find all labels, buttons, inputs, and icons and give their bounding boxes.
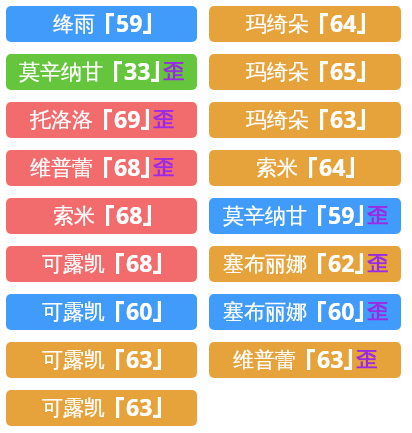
staticText: 玛绮朵 (246, 107, 309, 133)
staticText: 60 (126, 295, 153, 326)
staticText: 可露凯 (42, 347, 105, 373)
button[interactable]: 可露凯 (6, 294, 197, 330)
staticText: 玛绮朵 (246, 11, 309, 37)
staticText: 玛绮朵 (246, 59, 309, 85)
staticText: 65 (330, 55, 357, 86)
staticText: 绛雨 (53, 11, 95, 37)
staticText: 维普蕾 (233, 347, 296, 373)
button[interactable]: 塞布丽娜 (209, 294, 401, 330)
button[interactable]: 玛绮朵 (209, 6, 401, 42)
button[interactable]: 索米 (209, 150, 401, 186)
staticText: 62 (328, 247, 355, 278)
staticText: 63 (317, 343, 344, 374)
staticText: 索米 (256, 155, 298, 181)
button[interactable]: 索米 (6, 198, 197, 234)
button[interactable]: 托洛洛 (6, 102, 197, 138)
staticText: 歪 (367, 251, 388, 277)
staticText: 托洛洛 (30, 107, 93, 133)
staticText: 歪 (163, 59, 184, 85)
staticText: 59 (116, 7, 143, 38)
staticText: 塞布丽娜 (223, 251, 307, 277)
staticText: 68 (126, 247, 153, 278)
staticText: 歪 (153, 107, 174, 133)
staticText: 莫辛纳甘 (19, 59, 103, 85)
button[interactable]: 塞布丽娜 (209, 246, 401, 282)
staticText: 可露凯 (42, 251, 105, 277)
button[interactable]: 维普蕾 (209, 342, 401, 378)
staticText: 68 (114, 151, 141, 182)
staticText: 可露凯 (42, 299, 105, 325)
button[interactable]: 可露凯 (6, 342, 197, 378)
staticText: 索米 (53, 203, 95, 229)
button[interactable]: 玛绮朵 (209, 102, 401, 138)
staticText: 63 (126, 391, 153, 422)
staticText: 68 (116, 199, 143, 230)
button[interactable]: 莫辛纳甘 (209, 198, 401, 234)
button[interactable]: 玛绮朵 (209, 54, 401, 90)
staticText: 歪 (153, 155, 174, 181)
staticText: 可露凯 (42, 395, 105, 421)
staticText: 歪 (367, 299, 388, 325)
staticText: 歪 (356, 347, 377, 373)
staticText: 63 (330, 103, 357, 134)
staticText: 歪 (367, 203, 388, 229)
staticText: 33 (124, 55, 151, 86)
staticText: 维普蕾 (30, 155, 93, 181)
staticText: 60 (328, 295, 355, 326)
button[interactable]: 绛雨 (6, 6, 197, 42)
staticText: 塞布丽娜 (223, 299, 307, 325)
staticText: 63 (126, 343, 153, 374)
button[interactable]: 可露凯 (6, 390, 197, 426)
button[interactable]: 莫辛纳甘 (6, 54, 197, 90)
staticText: 59 (328, 199, 355, 230)
staticText: 莫辛纳甘 (223, 203, 307, 229)
staticText: 64 (319, 151, 346, 182)
staticText: 64 (330, 7, 357, 38)
staticText: 69 (114, 103, 141, 134)
button[interactable]: 可露凯 (6, 246, 197, 282)
button[interactable]: 维普蕾 (6, 150, 197, 186)
